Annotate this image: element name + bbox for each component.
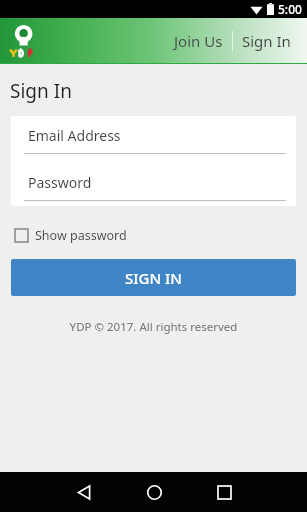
button[interactable]: Email Address [11, 126, 296, 154]
staticText: SIGN IN [125, 268, 182, 288]
button[interactable]: YDP home [6, 21, 44, 61]
button[interactable]: Password [11, 173, 296, 201]
staticText: Join Us [174, 31, 223, 51]
button[interactable]: Join Us [168, 25, 229, 57]
staticText: Email Address [28, 126, 121, 145]
button[interactable]: Recent apps [196, 472, 252, 512]
staticText: Sign In [10, 78, 72, 104]
button[interactable]: Show password [11, 224, 131, 247]
button[interactable]: Home [126, 472, 182, 512]
staticText: 5:00 [278, 1, 302, 17]
staticText: Show password [35, 227, 127, 244]
staticText: Password [28, 173, 92, 192]
button[interactable]: Back [56, 472, 112, 512]
staticText: Sign In [242, 31, 291, 51]
button[interactable]: Sign In [236, 25, 297, 57]
button[interactable]: SIGN IN [11, 259, 296, 296]
staticText: YDP © 2017. All rights reserved [0, 319, 307, 335]
